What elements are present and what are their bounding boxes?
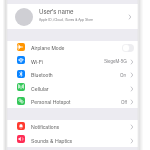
other: Open	[128, 13, 132, 20]
other: Open	[130, 137, 134, 144]
other: Open	[130, 85, 134, 92]
staticText: Sounds & Haptics	[31, 137, 73, 144]
staticText: Cellular	[31, 85, 49, 92]
staticText: Airplane Mode	[31, 44, 65, 51]
staticText: Wi-Fi	[31, 58, 44, 65]
button[interactable]: Airplane Mode	[7, 41, 138, 54]
button[interactable]: User's name	[7, 4, 138, 29]
staticText: Notifications	[31, 123, 60, 130]
staticText: User's name	[39, 7, 74, 16]
button[interactable]: Cellular	[7, 81, 138, 95]
button[interactable]: Notifications	[7, 120, 138, 133]
button[interactable]: Sounds & Haptics	[7, 133, 138, 147]
staticText: Bluetooth	[31, 71, 53, 78]
other: Open	[130, 98, 134, 105]
other: Open	[130, 58, 134, 65]
button[interactable]: Airplane Mode switch	[122, 44, 134, 52]
button[interactable]: Personal Hotspot	[7, 95, 138, 108]
staticText: SiegeM-5G	[104, 58, 127, 64]
other: Open	[130, 71, 134, 78]
staticText: On	[120, 72, 127, 78]
staticText: Off	[121, 99, 127, 105]
other: Open	[130, 123, 134, 130]
staticText: Apple ID, iCloud, iTunes & App Store	[39, 17, 93, 22]
button[interactable]: Bluetooth	[7, 68, 138, 81]
staticText: Personal Hotspot	[31, 98, 71, 105]
button[interactable]: Wi-Fi	[7, 54, 138, 68]
